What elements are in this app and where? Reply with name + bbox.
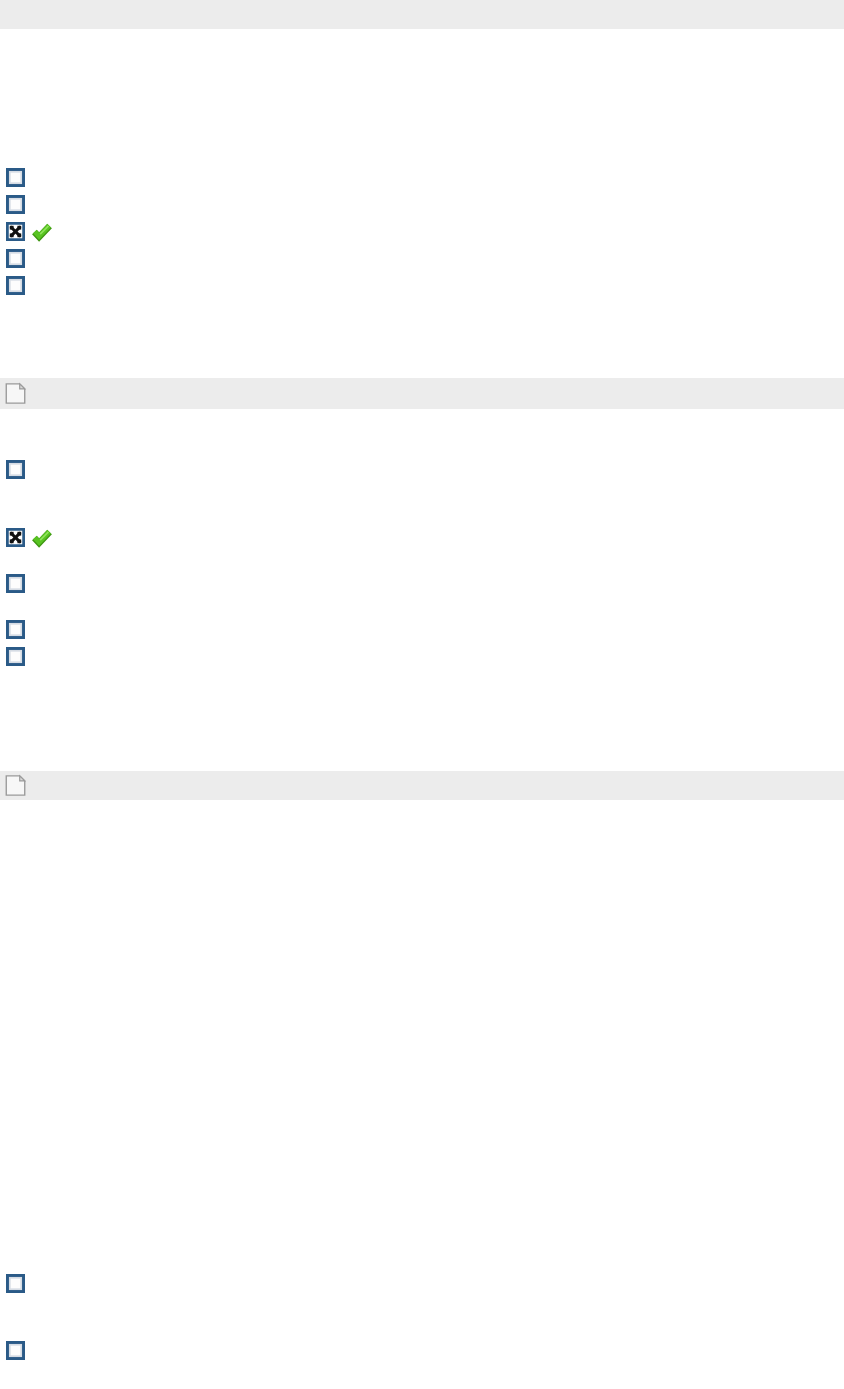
button[interactable]: Check box <box>6 195 25 214</box>
other: Verified <box>33 223 51 241</box>
button[interactable]: Check box <box>6 168 25 187</box>
button[interactable]: Document <box>0 771 844 800</box>
button[interactable]: Check box <box>6 276 25 295</box>
button[interactable]: Checked box <box>6 222 25 241</box>
button[interactable]: Check box <box>6 249 25 268</box>
other: Verified <box>33 529 51 547</box>
button[interactable]: Check box <box>6 620 25 639</box>
button[interactable]: Check box <box>6 460 25 479</box>
button[interactable]: Document <box>5 383 26 404</box>
button[interactable]: Check box <box>6 574 25 593</box>
button[interactable]: Check box <box>6 1341 25 1360</box>
button[interactable]: Checked box <box>6 528 25 547</box>
button[interactable]: Document <box>5 775 26 796</box>
button[interactable]: Check box <box>6 1274 25 1293</box>
button[interactable]: Document <box>0 378 844 409</box>
button[interactable]: Check box <box>6 647 25 666</box>
